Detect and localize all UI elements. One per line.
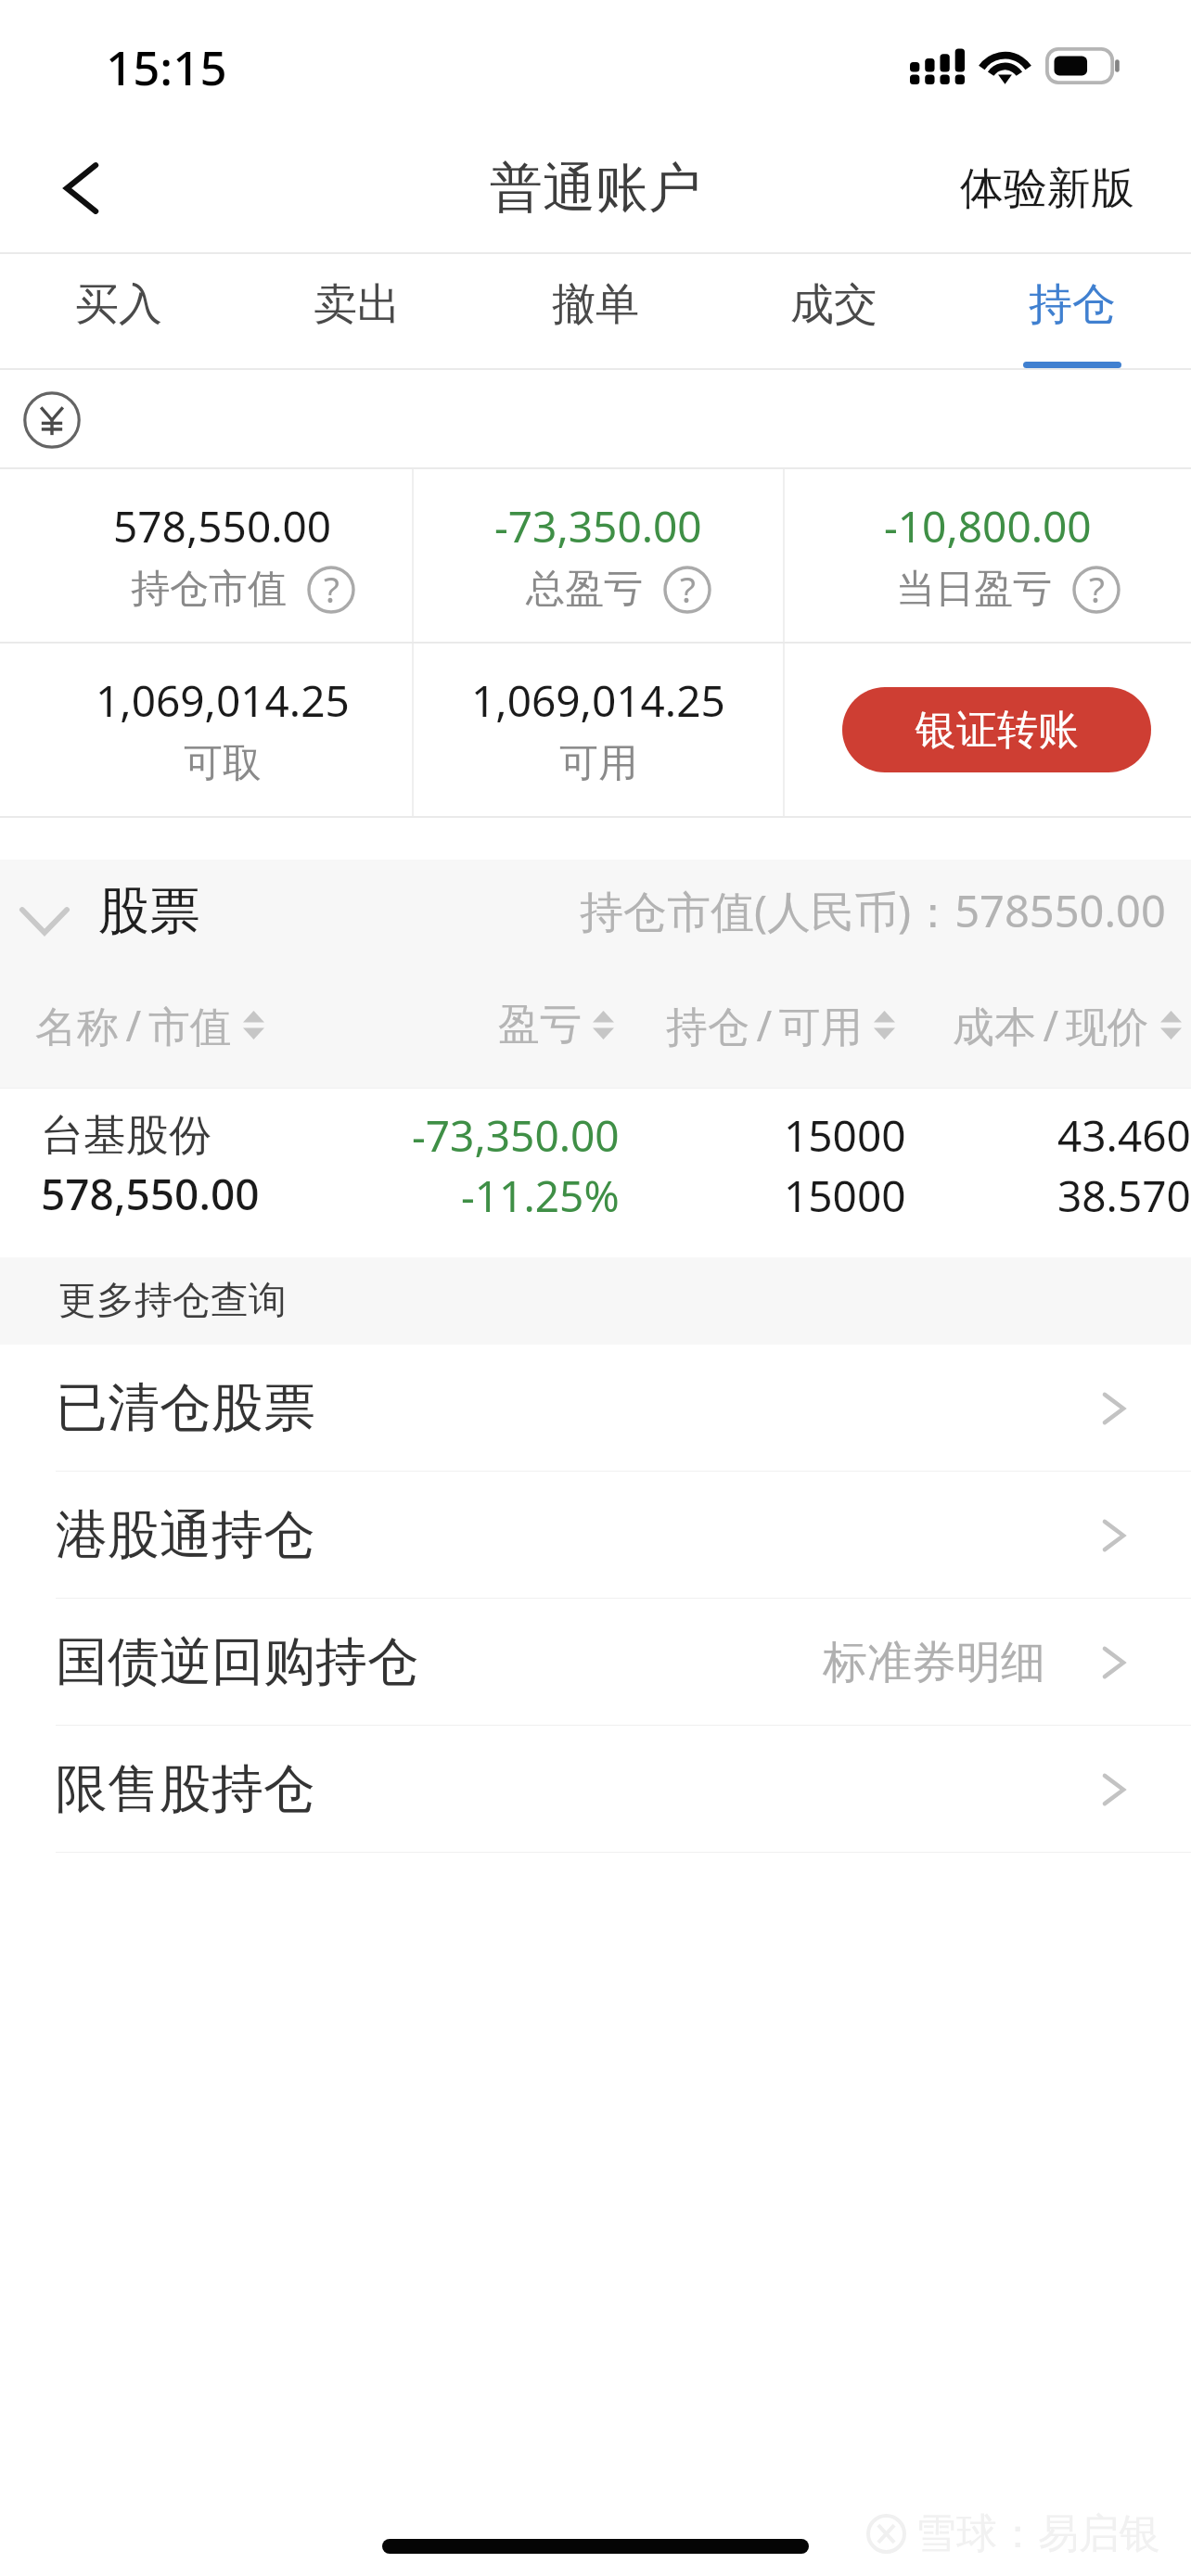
staticText: 普通账户 [490, 155, 701, 222]
button[interactable]: 股票 [0, 860, 1191, 962]
staticText: 雪球：易启银 [916, 2508, 1160, 2559]
button[interactable]: 成交 [714, 254, 953, 370]
staticText: 578,550.00 [41, 1165, 260, 1223]
button[interactable]: 关于总盈亏 [663, 566, 711, 614]
staticText: 限售股持仓 [56, 1756, 315, 1822]
button[interactable]: 台基股份 [0, 1089, 1191, 1257]
staticText: 当日盈亏 [896, 565, 1052, 614]
staticText: 可取 [184, 739, 262, 788]
button[interactable]: 买入 [0, 254, 237, 370]
staticText: 更多持仓查询 [58, 1277, 287, 1325]
staticText: 38.570 [1057, 1167, 1191, 1225]
staticText: -11.25% [461, 1167, 620, 1225]
staticText: 43.460 [1057, 1106, 1191, 1165]
button[interactable]: 关于当日盈亏 [1072, 566, 1121, 614]
button[interactable]: 卖出 [237, 254, 476, 370]
staticText: 成交 [790, 277, 877, 332]
staticText: 成本 / 现价 [953, 997, 1149, 1053]
staticText: 标准券明细 [823, 1635, 1045, 1690]
staticText: -73,350.00 [412, 1106, 620, 1165]
staticText: 1,069,014.25 [96, 671, 350, 730]
staticText: 国债逆回购持仓 [56, 1629, 419, 1695]
button[interactable]: 限售股持仓 [0, 1726, 1191, 1853]
staticText: 1,069,014.25 [471, 671, 725, 730]
staticText: 股票 [98, 879, 200, 943]
button[interactable]: 关于持仓市值 [307, 566, 355, 614]
staticText: 银证转账 [916, 705, 1079, 756]
button[interactable]: 持仓 [953, 254, 1191, 370]
staticText: 体验新版 [960, 161, 1134, 216]
button[interactable]: 港股通持仓 [0, 1472, 1191, 1599]
staticText: 卖出 [314, 277, 401, 332]
staticText: ? [1089, 564, 1105, 612]
staticText: 15:15 [106, 34, 227, 98]
button[interactable]: Back [0, 122, 154, 254]
staticText: 578,550.00 [113, 497, 332, 555]
staticText: -10,800.00 [884, 497, 1092, 555]
button[interactable]: 银证转账 [842, 687, 1151, 772]
staticText: 盈亏 [498, 999, 582, 1052]
staticText: 已清仓股票 [56, 1375, 315, 1441]
staticText: ? [324, 564, 339, 612]
button[interactable]: 撤单 [476, 254, 714, 370]
staticText: ? [680, 564, 696, 612]
staticText: 撤单 [552, 277, 639, 332]
button[interactable]: Currency CNY [7, 376, 96, 465]
staticText: 名称 / 市值 [35, 997, 232, 1053]
staticText: 买入 [75, 277, 162, 332]
staticText: 持仓市值 [131, 565, 287, 614]
staticText: 总盈亏 [526, 565, 643, 614]
staticText: -73,350.00 [494, 497, 702, 555]
button[interactable]: 国债逆回购持仓 [0, 1599, 1191, 1726]
staticText: 持仓市值(人民币)：578550.00 [580, 881, 1166, 940]
staticText: 15000 [784, 1106, 906, 1165]
button[interactable]: 已清仓股票 [0, 1345, 1191, 1472]
staticText: 可用 [559, 739, 637, 788]
staticText: 持仓 / 可用 [666, 997, 863, 1053]
button[interactable]: 体验新版 [960, 122, 1134, 254]
staticText: 港股通持仓 [56, 1502, 315, 1568]
staticText: 台基股份 [41, 1109, 211, 1163]
staticText: 15000 [784, 1167, 906, 1225]
staticText: 持仓 [1029, 277, 1116, 332]
